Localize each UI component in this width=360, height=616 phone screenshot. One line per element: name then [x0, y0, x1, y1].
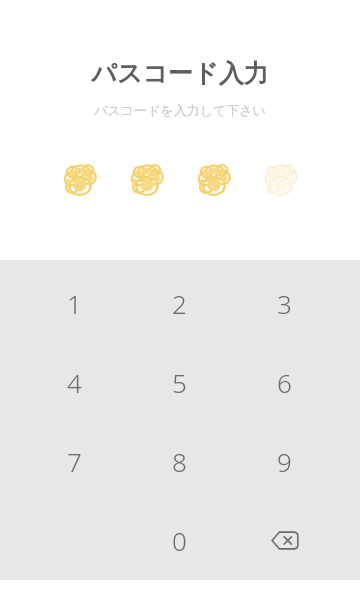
staticText: パスコードを入力して下さい	[94, 102, 266, 118]
staticText: 7	[67, 444, 82, 479]
button[interactable]: 2	[127, 264, 232, 343]
button[interactable]: 1	[22, 264, 127, 343]
staticText: 4	[67, 365, 82, 400]
staticText: 3	[277, 286, 292, 321]
staticText: 2	[172, 286, 187, 321]
button[interactable]: 7	[22, 422, 127, 501]
staticText: パスコード入力	[91, 58, 269, 89]
staticText: 9	[277, 444, 292, 479]
button[interactable]: 9	[232, 422, 337, 501]
staticText: 5	[172, 365, 187, 400]
button[interactable]: 0	[127, 501, 232, 580]
button[interactable]: Backspace	[232, 501, 337, 580]
staticText: 1	[67, 286, 82, 321]
button[interactable]: 8	[127, 422, 232, 501]
staticText: 6	[277, 365, 292, 400]
staticText: 0	[172, 523, 187, 558]
button[interactable]: 5	[127, 343, 232, 422]
staticText: 8	[172, 444, 187, 479]
button[interactable]: 3	[232, 264, 337, 343]
button[interactable]: 6	[232, 343, 337, 422]
button[interactable]: 4	[22, 343, 127, 422]
